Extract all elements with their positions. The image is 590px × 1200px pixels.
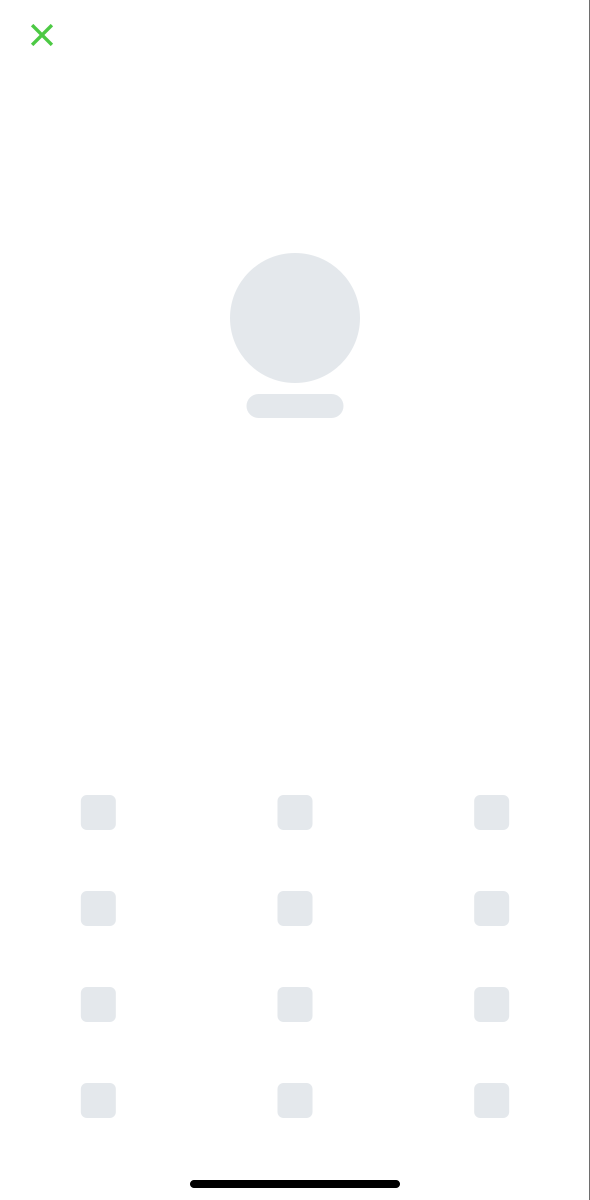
button[interactable]: Close — [20, 13, 64, 57]
